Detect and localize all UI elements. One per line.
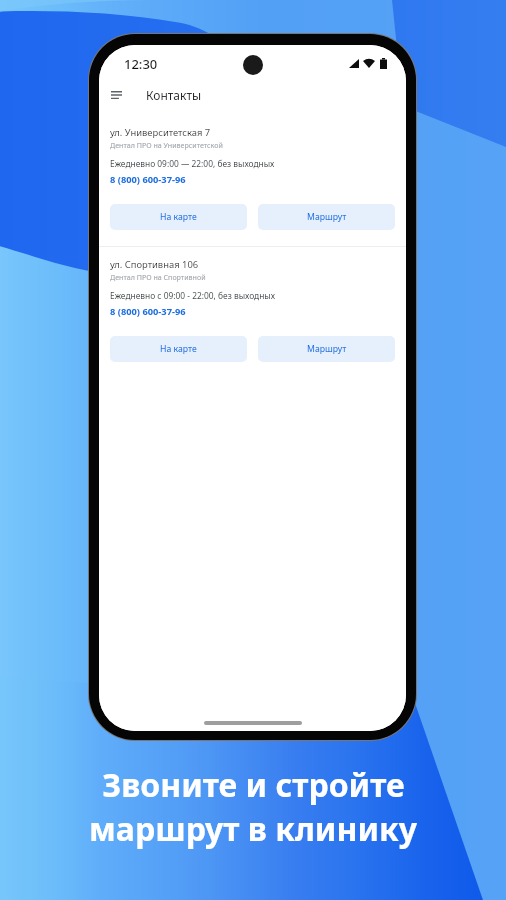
button[interactable]: На карте (110, 204, 247, 230)
staticText: Маршрут (307, 211, 347, 223)
staticText: Контакты (146, 87, 202, 103)
staticText: Ежедневно 09:00 — 22:00, без выходных (110, 158, 275, 169)
button[interactable]: На карте (110, 336, 247, 362)
staticText: 12:30 (124, 55, 158, 73)
staticText: Дентал ПРО на Университетской (110, 140, 223, 150)
staticText: ул. Университетская 7 (110, 126, 211, 139)
button[interactable]: Menu (104, 83, 128, 107)
button[interactable]: Маршрут (258, 204, 395, 230)
staticText: Звоните и стройте (102, 763, 405, 807)
staticText: Дентал ПРО на Спортивной (110, 272, 206, 282)
staticText: ул. Спортивная 106 (110, 258, 199, 271)
button[interactable]: 8 (800) 600-37-96 (110, 173, 186, 186)
staticText: маршрут в клинику (89, 807, 417, 851)
staticText: Маршрут (307, 343, 347, 355)
staticText: На карте (160, 211, 197, 223)
button[interactable]: Маршрут (258, 336, 395, 362)
staticText: На карте (160, 343, 197, 355)
staticText: Ежедневно с 09:00 - 22:00, без выходных (110, 290, 275, 301)
button[interactable]: 8 (800) 600-37-96 (110, 305, 186, 318)
